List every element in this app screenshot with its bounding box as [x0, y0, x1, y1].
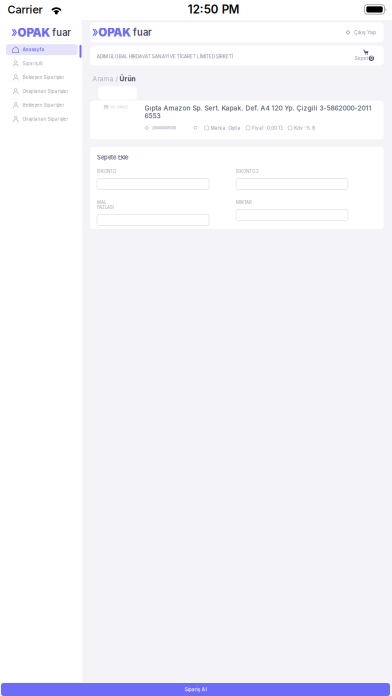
staticText: NO IMAGE	[110, 105, 128, 109]
staticText: FAZLASI	[97, 205, 114, 210]
staticText: 12:50 PM	[188, 2, 240, 16]
staticText: Sepete Ekle	[97, 154, 128, 161]
staticText: ADIM GLOBAL HIRDAVAT SANAYİ VE TİCARET L…	[97, 54, 233, 59]
staticText: Sepet	[354, 55, 368, 61]
staticText: Kdv : % 8	[294, 125, 315, 131]
staticText: OPAK	[17, 26, 50, 39]
staticText: MIKTAR	[236, 200, 252, 205]
staticText: 2000000015018	[152, 126, 176, 130]
staticText: Carrier	[7, 3, 42, 16]
staticText: Bekleyen Siparişler	[22, 75, 64, 80]
button[interactable]: Anasayfa	[6, 44, 77, 55]
staticText: OPAK	[98, 25, 131, 39]
staticText: Ürün	[119, 75, 135, 83]
button[interactable]: Sepet	[354, 50, 374, 61]
button[interactable]: Onaylanan Siparişler	[6, 86, 77, 97]
staticText: Bekleyen Siparişler	[22, 102, 64, 108]
button[interactable]: Bekleyen Siparişler	[6, 72, 77, 83]
staticText: MAL	[97, 200, 106, 205]
button[interactable]: Sipariş Al	[6, 58, 77, 69]
staticText: Onaylanan Siparişler	[22, 89, 68, 94]
staticText: fuar	[133, 27, 152, 38]
staticText: Sipariş Al	[184, 686, 206, 692]
button[interactable]: Sipariş Al	[0, 683, 392, 696]
staticText: İSKONTO	[97, 169, 116, 174]
staticText: Onaylanan Siparişler	[22, 116, 68, 122]
staticText: Çıkış Yap	[354, 29, 376, 35]
button[interactable]: Bekleyen Siparişler	[6, 100, 77, 111]
staticText: Marka : Gıpta	[211, 125, 241, 131]
staticText: Gıpta Amazon Sp. Sert. Kapak. Def. A4 12…	[144, 104, 371, 120]
staticText: Fiyat : 0,00 TL	[252, 125, 284, 131]
staticText: Arama /	[92, 75, 117, 83]
staticText: Anasayfa	[22, 47, 44, 52]
button[interactable]: Çıkış Yap	[343, 26, 379, 38]
staticText: 0	[370, 56, 373, 61]
button[interactable]: Onaylanan Siparişler	[6, 114, 77, 125]
staticText: fuar	[52, 27, 71, 38]
staticText: Sipariş Al	[22, 61, 42, 66]
staticText: İSKONTO 2	[236, 169, 259, 174]
